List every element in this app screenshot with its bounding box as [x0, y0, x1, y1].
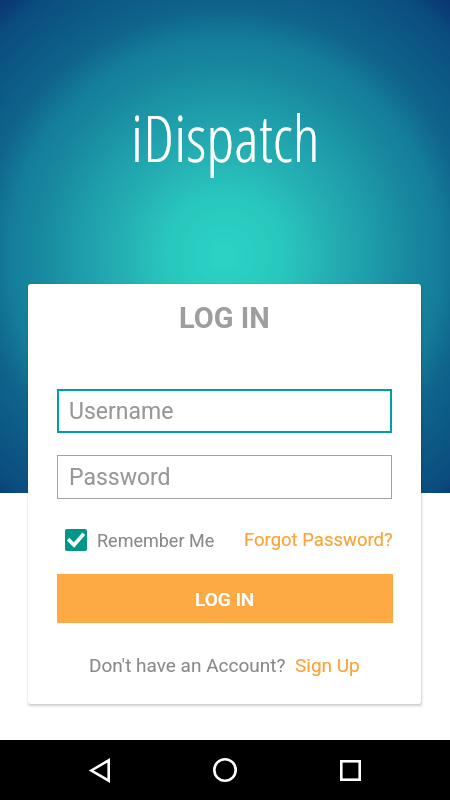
staticText: LOG IN: [195, 588, 255, 610]
button[interactable]: Password: [57, 455, 392, 499]
staticText: LOG IN: [179, 301, 270, 335]
button[interactable]: LOG IN: [57, 574, 393, 623]
button[interactable]: Home: [187, 740, 263, 800]
staticText: Username: [69, 398, 174, 425]
button[interactable]: Recent apps: [312, 740, 388, 800]
staticText: Forgot Password?: [244, 529, 393, 551]
button[interactable]: Remember Me: [65, 527, 215, 553]
staticText: iDispatch: [131, 94, 320, 181]
button[interactable]: Username: [57, 389, 392, 433]
staticText: Remember Me: [97, 530, 215, 551]
button[interactable]: Back: [62, 740, 138, 800]
staticText: Sign Up: [295, 654, 360, 676]
staticText: Password: [69, 464, 171, 491]
staticText: Don't have an Account?: [89, 654, 286, 676]
button[interactable]: Sign Up: [295, 650, 360, 680]
button[interactable]: Forgot Password?: [244, 525, 393, 555]
